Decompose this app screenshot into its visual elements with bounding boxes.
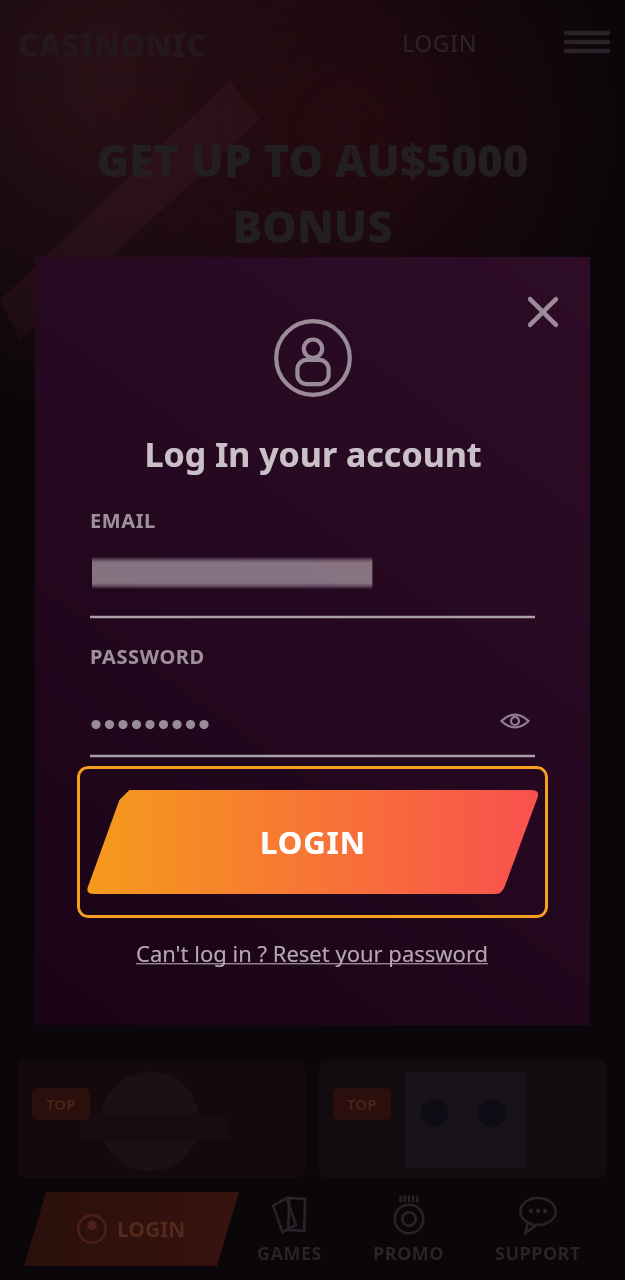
staticText: Can't log in ? Reset your password	[136, 938, 489, 968]
staticText: PROMO	[373, 1241, 444, 1266]
staticText: LOGIN	[260, 821, 366, 863]
button[interactable]: LOGIN	[77, 766, 548, 918]
staticText: CASINONIC	[18, 24, 207, 66]
button[interactable]: PROMO	[363, 1189, 454, 1270]
button[interactable]: Show password	[90, 670, 535, 758]
button[interactable]: TOP	[18, 1060, 305, 1178]
button[interactable]: Menu	[560, 15, 614, 69]
staticText: GAMES	[257, 1241, 322, 1266]
button[interactable]: Show password	[495, 701, 535, 741]
staticText: PASSWORD	[90, 643, 205, 670]
button[interactable]: SUPPORT	[485, 1189, 591, 1270]
staticText: WINNERS PLAY HERE	[18, 68, 184, 88]
button[interactable]	[90, 534, 535, 619]
staticText: LOGIN	[402, 27, 478, 58]
staticText: LOGIN	[117, 1215, 186, 1244]
button[interactable]: LOGIN	[24, 1192, 239, 1266]
button[interactable]: Close	[516, 285, 570, 339]
button[interactable]: GAMES	[247, 1189, 332, 1270]
staticText: BONUS	[232, 196, 393, 256]
staticText: TOP	[347, 1094, 377, 1114]
staticText: Log In your account	[144, 431, 482, 477]
staticText: EMAIL	[90, 507, 156, 534]
staticText: GET UP TO AU$5000	[96, 130, 529, 190]
staticText: TOP	[46, 1094, 76, 1114]
button[interactable]: TOP	[319, 1060, 607, 1178]
button[interactable]: Can't log in ? Reset your password	[126, 932, 499, 974]
button[interactable]: LOGIN	[388, 19, 492, 66]
staticText: SUPPORT	[495, 1241, 581, 1266]
